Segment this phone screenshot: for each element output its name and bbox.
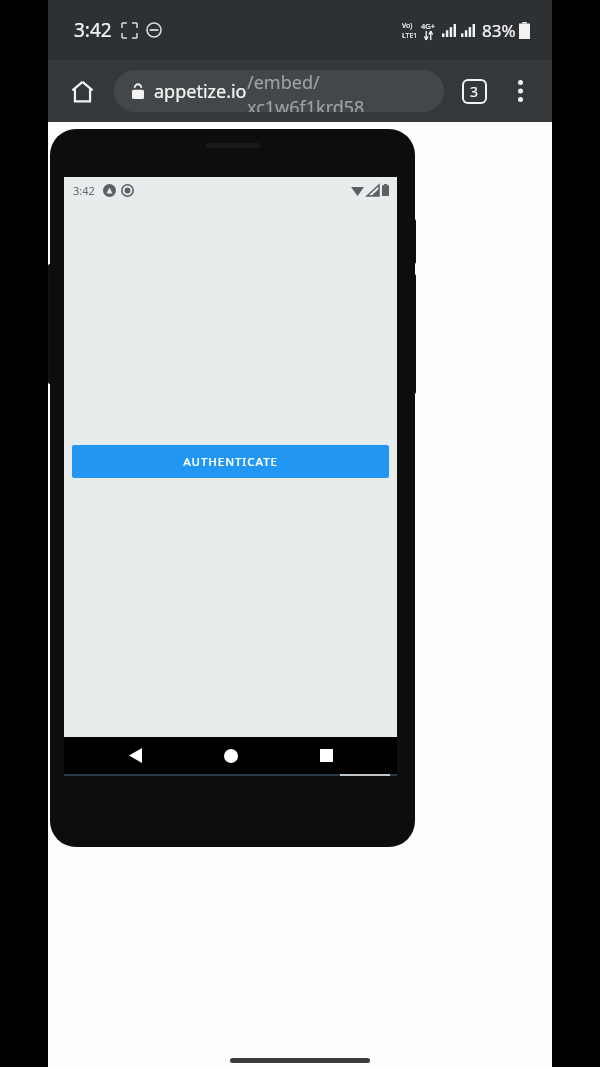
button[interactable]: Back: [110, 737, 160, 774]
button[interactable]: AUTHENTICATE: [72, 445, 389, 478]
staticText: 4G+: [421, 21, 436, 31]
staticText: 3:42: [73, 183, 95, 198]
staticText: Vo): [402, 21, 413, 31]
button[interactable]: Recent apps: [301, 737, 351, 774]
button[interactable]: appetize.io: [114, 70, 444, 112]
button[interactable]: Tabs: [458, 75, 490, 107]
staticText: AUTHENTICATE: [183, 454, 278, 470]
staticText: 3:42: [74, 17, 112, 43]
staticText: appetize.io: [154, 79, 247, 104]
button[interactable]: More options: [500, 71, 540, 111]
staticText: 83%: [482, 19, 516, 42]
staticText: 3: [470, 82, 479, 101]
button[interactable]: Home: [206, 737, 256, 774]
staticText: LTE1: [402, 31, 418, 41]
button[interactable]: Home: [62, 71, 102, 111]
staticText: /embed/xc1w6f1krd58: [247, 70, 426, 112]
